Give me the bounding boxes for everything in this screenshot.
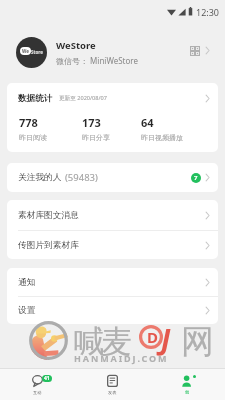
staticText: HANMAIDJ.COM [74, 352, 169, 364]
staticText: 41 [44, 375, 50, 382]
staticText: 互动 [33, 390, 42, 395]
staticText: 喊 [73, 322, 104, 361]
staticText: D [147, 327, 158, 347]
button[interactable]: 我 [150, 369, 225, 400]
button[interactable]: 发表 [75, 369, 150, 400]
staticText: 发表 [108, 390, 117, 395]
staticText: (59483) [65, 171, 98, 184]
button[interactable]: We [0, 20, 225, 76]
staticText: 传图片到素材库 [18, 240, 79, 251]
staticText: 昨日分享 [82, 133, 110, 142]
staticText: Store [31, 49, 43, 55]
staticText: 设置 [18, 305, 36, 316]
staticText: 64 [141, 115, 154, 130]
staticText: 7 [194, 174, 198, 182]
button[interactable]: 素材库图文消息 [7, 200, 218, 230]
staticText: 网 [181, 321, 214, 363]
staticText: 我 [185, 390, 190, 395]
staticText: 微信号： MiniWeStore [56, 55, 138, 66]
button[interactable]: 41 [0, 369, 75, 400]
button[interactable]: 通知 [7, 268, 218, 296]
staticText: J [161, 320, 171, 358]
staticText: 通知 [18, 277, 36, 288]
staticText: We [22, 48, 29, 54]
staticText: 数据统计 [18, 93, 53, 104]
button[interactable]: 设置 [7, 297, 218, 324]
staticText: 173 [82, 115, 101, 130]
button[interactable]: 数据统计 [7, 83, 218, 152]
button[interactable]: 关注我的人 [7, 163, 218, 192]
staticText: 昨日阅读 [19, 133, 47, 142]
staticText: 昨日视频播放 [141, 133, 183, 142]
staticText: 更新至 2020/08/07 [59, 94, 107, 102]
staticText: WeStore [56, 39, 96, 52]
staticText: 关注我的人 [18, 172, 62, 183]
other: QR code [187, 45, 203, 61]
staticText: 778 [19, 115, 38, 130]
staticText: 素材库图文消息 [18, 210, 79, 221]
staticText: 12:30 [196, 6, 220, 18]
staticText: 麦 [101, 322, 132, 361]
button[interactable]: 传图片到素材库 [7, 231, 218, 259]
